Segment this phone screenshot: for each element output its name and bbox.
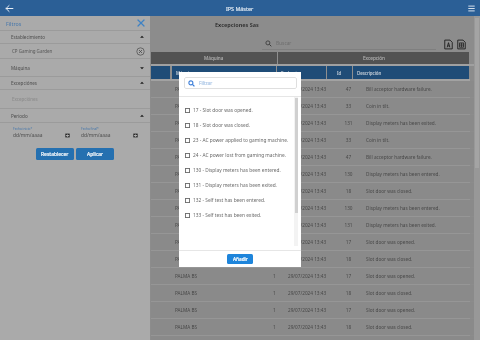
staticText: PALMA BS: [175, 137, 273, 143]
button[interactable]: Excepciónes: [0, 77, 150, 89]
staticText: PALMA BS: [175, 103, 273, 109]
button[interactable]: Filtrar: [184, 77, 297, 89]
button[interactable]: PALMA BS: [151, 166, 480, 182]
staticText: 17: [337, 273, 360, 279]
staticText: Periodo: [11, 113, 28, 119]
staticText: Excepciónes: [12, 96, 38, 102]
button[interactable]: Fecha ↑: [277, 66, 326, 79]
staticText: 29/07/2024 13:43: [288, 188, 337, 194]
button[interactable]: PALMA BS: [151, 234, 480, 250]
button[interactable]: Fecha inicio*: [13, 127, 70, 139]
button[interactable]: Export to PDF: [443, 39, 454, 50]
button[interactable]: PALMA BS: [151, 132, 480, 148]
staticText: Bill acceptor hardware failure.: [366, 86, 479, 92]
staticText: 29/07/2024 13:43: [288, 171, 337, 177]
staticText: Coin in tilt.: [366, 137, 479, 143]
button[interactable]: Remove establishment: [136, 47, 145, 56]
staticText: Buscar: [276, 40, 292, 47]
staticText: PALMA BS: [175, 222, 273, 228]
button[interactable]: PALMA BS: [151, 268, 480, 284]
button[interactable]: PALMA BS: [151, 285, 480, 301]
button[interactable]: 130 - Display meters has been entered.: [179, 163, 301, 178]
staticText: 29/07/2024 13:43: [288, 256, 337, 262]
staticText: Excepción: [363, 55, 385, 61]
staticText: 18: [337, 188, 360, 194]
button[interactable]: 24 - AC power lost from gaming machine.: [179, 148, 301, 163]
staticText: Slot door was closed.: [366, 188, 479, 194]
staticText: Restablecer: [41, 151, 69, 158]
staticText: dd/mm/aaaa: [81, 132, 133, 139]
button[interactable]: 132 - Self test has been entered.: [179, 193, 301, 208]
staticText: Máquina: [204, 55, 224, 61]
button[interactable]: PALMA BS: [151, 302, 480, 318]
button[interactable]: 18 - Slot door was closed.: [179, 118, 301, 133]
button[interactable]: Close filters: [136, 18, 146, 28]
staticText: 131: [337, 120, 360, 126]
button[interactable]: Id: [327, 66, 352, 79]
button[interactable]: Periodo: [0, 109, 150, 122]
button[interactable]: PALMA BS: [151, 319, 480, 335]
staticText: Slot door was closed.: [366, 256, 479, 262]
staticText: Fecha inicio*: [13, 127, 33, 131]
button[interactable]: PALMA BS: [151, 217, 480, 233]
staticText: 33: [337, 103, 360, 109]
staticText: 29/07/2024 13:43: [288, 154, 337, 160]
staticText: 132 - Self test has been entered.: [193, 197, 266, 204]
staticText: 29/07/2024 13:43: [288, 222, 337, 228]
staticText: Filtros: [6, 20, 22, 27]
button[interactable]: PALMA BS: [151, 200, 480, 216]
button[interactable]: 133 - Self test has been exited.: [179, 208, 301, 223]
button[interactable]: Descripción: [353, 66, 469, 79]
staticText: 131 - Display meters has been exited.: [193, 182, 277, 189]
staticText: 23 - AC power applied to gaming machine.: [193, 137, 289, 144]
staticText: 29/07/2024 13:43: [288, 120, 337, 126]
staticText: Display meters has been exited.: [366, 222, 479, 228]
staticText: 1: [273, 273, 288, 279]
staticText: PALMA BS: [175, 171, 273, 177]
staticText: 18 - Slot door was closed.: [193, 122, 250, 129]
staticText: Fecha final*: [81, 127, 99, 131]
staticText: 29/07/2024 13:43: [288, 324, 337, 330]
staticText: 17: [337, 307, 360, 313]
button[interactable]: 17 - Slot door was opened.: [179, 103, 301, 118]
button[interactable]: PALMA BS: [151, 183, 480, 199]
staticText: Establecimiento: [11, 34, 45, 40]
button[interactable]: PALMA BS: [151, 98, 480, 114]
button[interactable]: Menu: [466, 3, 477, 14]
staticText: Slot door was closed.: [366, 290, 479, 296]
button[interactable]: PALMA BS: [151, 115, 480, 131]
staticText: PALMA BS: [175, 324, 273, 330]
button[interactable]: 131 - Display meters has been exited.: [179, 178, 301, 193]
button[interactable]: PALMA BS: [151, 251, 480, 267]
staticText: PALMA BS: [175, 290, 273, 296]
button[interactable]: PALMA BS: [151, 81, 480, 97]
staticText: 24 - AC power lost from gaming machine.: [193, 152, 286, 159]
button[interactable]: Back: [3, 2, 16, 15]
staticText: Añadir: [233, 256, 248, 262]
button[interactable]: Establecimiento: [0, 31, 150, 43]
button[interactable]: PALMA BS: [151, 149, 480, 165]
button[interactable]: 23 - AC power applied to gaming machine.: [179, 133, 301, 148]
button[interactable]: Fecha final*: [81, 127, 138, 139]
button[interactable]: Añadir: [227, 254, 253, 264]
button[interactable]: Buscar: [262, 37, 436, 50]
button[interactable]: Aplicar: [76, 148, 114, 160]
staticText: 18: [337, 324, 360, 330]
staticText: Slot door was opened.: [366, 273, 479, 279]
staticText: PALMA BS: [175, 273, 273, 279]
staticText: Coin in tilt.: [366, 103, 479, 109]
button[interactable]: Máquina: [172, 66, 276, 79]
button[interactable]: Restablecer: [36, 148, 74, 160]
button[interactable]: Export to Excel: [456, 39, 467, 50]
staticText: 1: [273, 86, 288, 92]
button[interactable]: Máquina: [0, 59, 150, 76]
staticText: 47: [337, 154, 360, 160]
